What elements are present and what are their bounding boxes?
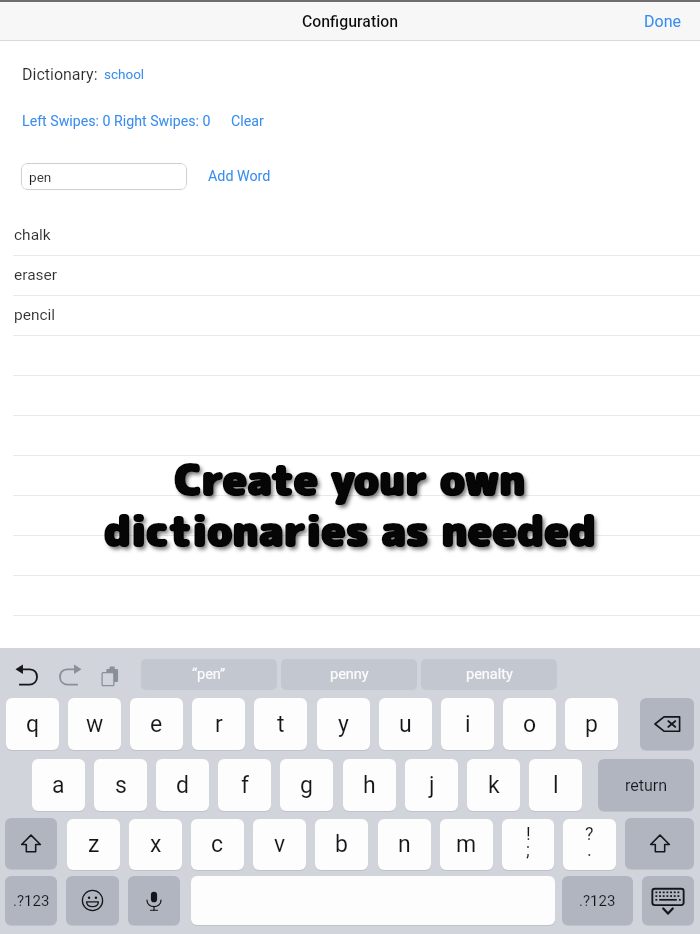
staticText: return bbox=[625, 776, 668, 795]
button[interactable]: p bbox=[565, 698, 618, 750]
button[interactable]: return bbox=[598, 759, 694, 811]
button[interactable]: t bbox=[254, 698, 307, 750]
button[interactable]: Redo bbox=[48, 660, 92, 692]
button[interactable]: penalty bbox=[421, 659, 557, 690]
button[interactable]: m bbox=[440, 819, 493, 870]
staticText: eraser bbox=[14, 266, 58, 284]
staticText: Dictionary: bbox=[22, 65, 98, 84]
staticText: Add Word bbox=[208, 168, 271, 185]
staticText: .?123 bbox=[579, 892, 616, 910]
button[interactable]: d bbox=[156, 759, 209, 811]
button[interactable]: Done bbox=[626, 2, 698, 40]
staticText: l bbox=[553, 772, 559, 799]
staticText: d bbox=[176, 772, 189, 799]
staticText: o bbox=[523, 711, 537, 738]
staticText: f bbox=[241, 772, 249, 799]
staticText: b bbox=[335, 831, 348, 858]
button[interactable]: x bbox=[129, 819, 182, 870]
button[interactable] bbox=[0, 215, 700, 255]
staticText: x bbox=[150, 831, 162, 858]
staticText: c bbox=[211, 831, 224, 858]
staticText: y bbox=[338, 711, 349, 738]
staticText: e bbox=[150, 711, 163, 738]
staticText: a bbox=[52, 772, 65, 799]
staticText: Configuration bbox=[302, 12, 398, 31]
staticText: Clear bbox=[231, 113, 264, 130]
staticText: m bbox=[456, 831, 477, 858]
staticText: ! bbox=[526, 823, 531, 844]
button[interactable] bbox=[0, 335, 700, 375]
button[interactable]: ! bbox=[502, 819, 554, 870]
button[interactable]: f bbox=[218, 759, 271, 811]
staticText: i bbox=[465, 711, 471, 738]
button[interactable]: Hide keyboard bbox=[642, 876, 694, 925]
button[interactable]: pen bbox=[21, 163, 187, 190]
staticText: g bbox=[300, 772, 313, 799]
button[interactable] bbox=[0, 535, 700, 575]
button[interactable] bbox=[0, 375, 700, 415]
button[interactable] bbox=[0, 415, 700, 455]
button[interactable]: Dictate bbox=[128, 876, 180, 925]
button[interactable]: Add Word bbox=[203, 163, 275, 190]
staticText: n bbox=[398, 831, 411, 858]
button[interactable]: Shift bbox=[5, 818, 57, 869]
staticText: h bbox=[363, 772, 376, 799]
staticText: pen bbox=[29, 169, 52, 185]
button[interactable]: Clear bbox=[231, 110, 264, 132]
button[interactable]: Backspace bbox=[640, 698, 694, 750]
button[interactable]: Paste bbox=[92, 660, 128, 692]
staticText: school bbox=[104, 66, 145, 82]
button[interactable]: s bbox=[94, 759, 147, 811]
staticText: t bbox=[277, 711, 285, 738]
button[interactable]: n bbox=[378, 819, 431, 870]
staticText: q bbox=[26, 711, 40, 738]
button[interactable]: z bbox=[67, 819, 120, 870]
button[interactable] bbox=[0, 295, 700, 335]
staticText: “pen” bbox=[192, 666, 226, 683]
button[interactable]: ? bbox=[563, 819, 616, 870]
button[interactable]: i bbox=[441, 698, 494, 750]
button[interactable]: .?123 bbox=[5, 876, 57, 925]
button[interactable]: penny bbox=[281, 659, 417, 690]
button[interactable] bbox=[0, 255, 700, 295]
staticText: Create your own bbox=[0, 450, 700, 934]
button[interactable]: y bbox=[317, 698, 370, 750]
button[interactable]: g bbox=[280, 759, 333, 811]
staticText: ? bbox=[585, 823, 594, 844]
staticText: Left Swipes: 0 Right Swipes: 0 bbox=[22, 113, 211, 130]
button[interactable]: v bbox=[253, 819, 306, 870]
button[interactable]: o bbox=[503, 698, 556, 750]
staticText: Create your own bbox=[0, 450, 700, 934]
button[interactable]: r bbox=[192, 698, 245, 750]
button[interactable]: a bbox=[32, 759, 85, 811]
button[interactable]: j bbox=[405, 759, 458, 811]
button[interactable]: b bbox=[315, 819, 368, 870]
button[interactable]: h bbox=[343, 759, 396, 811]
button[interactable]: q bbox=[6, 698, 59, 750]
button[interactable]: Dictionary: bbox=[22, 63, 98, 85]
button[interactable]: .?123 bbox=[562, 876, 633, 925]
button[interactable]: Shift bbox=[625, 818, 694, 869]
staticText: w bbox=[86, 711, 104, 738]
button[interactable]: “pen” bbox=[141, 659, 277, 690]
button[interactable]: e bbox=[130, 698, 183, 750]
staticText: k bbox=[488, 772, 500, 799]
staticText: dictionaries as needed bbox=[0, 501, 700, 934]
button[interactable]: Undo bbox=[5, 660, 49, 692]
staticText: p bbox=[585, 711, 598, 738]
button[interactable] bbox=[0, 455, 700, 495]
button[interactable]: Configuration bbox=[290, 2, 410, 40]
button[interactable]: u bbox=[379, 698, 432, 750]
button[interactable]: w bbox=[68, 698, 121, 750]
button[interactable]: Emoji bbox=[66, 876, 119, 925]
button[interactable]: k bbox=[467, 759, 520, 811]
button[interactable] bbox=[0, 575, 700, 615]
button[interactable]: c bbox=[191, 819, 244, 870]
button[interactable]: Left Swipes: 0 Right Swipes: 0 bbox=[22, 110, 211, 132]
button[interactable]: l bbox=[529, 759, 582, 811]
staticText: z bbox=[88, 831, 100, 858]
staticText: Done bbox=[644, 12, 681, 31]
button[interactable] bbox=[0, 495, 700, 535]
button[interactable]: school bbox=[104, 63, 145, 85]
